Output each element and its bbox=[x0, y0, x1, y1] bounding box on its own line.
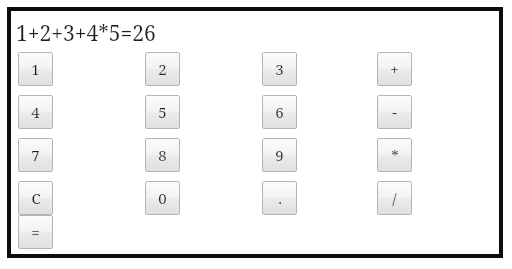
staticText: 4 bbox=[31, 102, 40, 122]
staticText: / bbox=[392, 188, 397, 208]
staticText: . bbox=[278, 188, 282, 208]
staticText: + bbox=[390, 59, 399, 79]
staticText: 8 bbox=[158, 145, 167, 165]
staticText: 0 bbox=[158, 188, 167, 208]
staticText: 1+2+3+4*5=26 bbox=[16, 19, 156, 47]
staticText: 2 bbox=[158, 59, 167, 79]
button[interactable]: 4 bbox=[18, 95, 53, 129]
button[interactable]: * bbox=[377, 138, 412, 172]
button[interactable]: 9 bbox=[262, 138, 297, 172]
button[interactable]: + bbox=[377, 52, 412, 86]
button[interactable]: 1 bbox=[18, 52, 53, 86]
button[interactable]: 3 bbox=[262, 52, 297, 86]
staticText: * bbox=[391, 145, 399, 165]
staticText: 3 bbox=[275, 59, 284, 79]
button[interactable]: / bbox=[377, 181, 412, 215]
staticText: 5 bbox=[158, 102, 167, 122]
staticText: C bbox=[31, 188, 41, 208]
button[interactable]: C bbox=[18, 181, 53, 215]
staticText: = bbox=[31, 222, 40, 242]
button[interactable]: 7 bbox=[18, 138, 53, 172]
button[interactable]: . bbox=[262, 181, 297, 215]
button[interactable]: = bbox=[18, 215, 53, 249]
staticText: - bbox=[392, 102, 397, 122]
staticText: 7 bbox=[31, 145, 40, 165]
button[interactable]: 0 bbox=[145, 181, 180, 215]
button[interactable]: 8 bbox=[145, 138, 180, 172]
button[interactable]: - bbox=[377, 95, 412, 129]
button[interactable]: 2 bbox=[145, 52, 180, 86]
button[interactable]: 6 bbox=[262, 95, 297, 129]
staticText: 6 bbox=[275, 102, 284, 122]
staticText: 1 bbox=[31, 59, 40, 79]
staticText: 9 bbox=[275, 145, 284, 165]
button[interactable]: 5 bbox=[145, 95, 180, 129]
